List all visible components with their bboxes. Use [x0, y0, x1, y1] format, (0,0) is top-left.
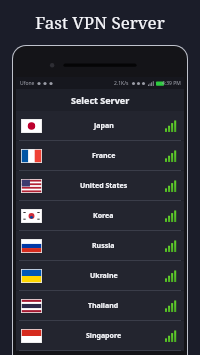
- staticText: Japan: [94, 121, 114, 131]
- staticText: 2.1K/s: [114, 80, 129, 87]
- button[interactable]: Korea: [16, 201, 184, 230]
- other: Signal strength: [165, 150, 179, 162]
- other: Signal strength: [165, 330, 179, 342]
- staticText: Singapore: [86, 331, 122, 341]
- button[interactable]: Singapore: [16, 321, 184, 350]
- staticText: United States: [80, 181, 128, 191]
- other: Signal strength: [165, 270, 179, 282]
- staticText: Ukraine: [90, 271, 118, 281]
- staticText: Select Server: [71, 94, 130, 106]
- button[interactable]: Japan: [16, 111, 184, 140]
- staticText: France: [92, 151, 116, 161]
- other: Signal strength: [165, 180, 179, 192]
- button[interactable]: United States: [16, 171, 184, 200]
- button[interactable]: Russia: [16, 231, 184, 260]
- staticText: Ufone: [20, 80, 35, 87]
- button[interactable]: Ukraine: [16, 261, 184, 290]
- staticText: Russia: [92, 241, 115, 251]
- staticText: Fast VPN Server: [35, 11, 165, 34]
- button[interactable]: France: [16, 141, 184, 170]
- other: Signal strength: [165, 240, 179, 252]
- other: Signal strength: [165, 300, 179, 312]
- other: Signal strength: [165, 120, 179, 132]
- button[interactable]: Thailand: [16, 291, 184, 320]
- staticText: 4:39 PM: [162, 80, 181, 87]
- staticText: Korea: [93, 211, 114, 221]
- staticText: Thailand: [88, 301, 119, 311]
- other: Signal strength: [165, 210, 179, 222]
